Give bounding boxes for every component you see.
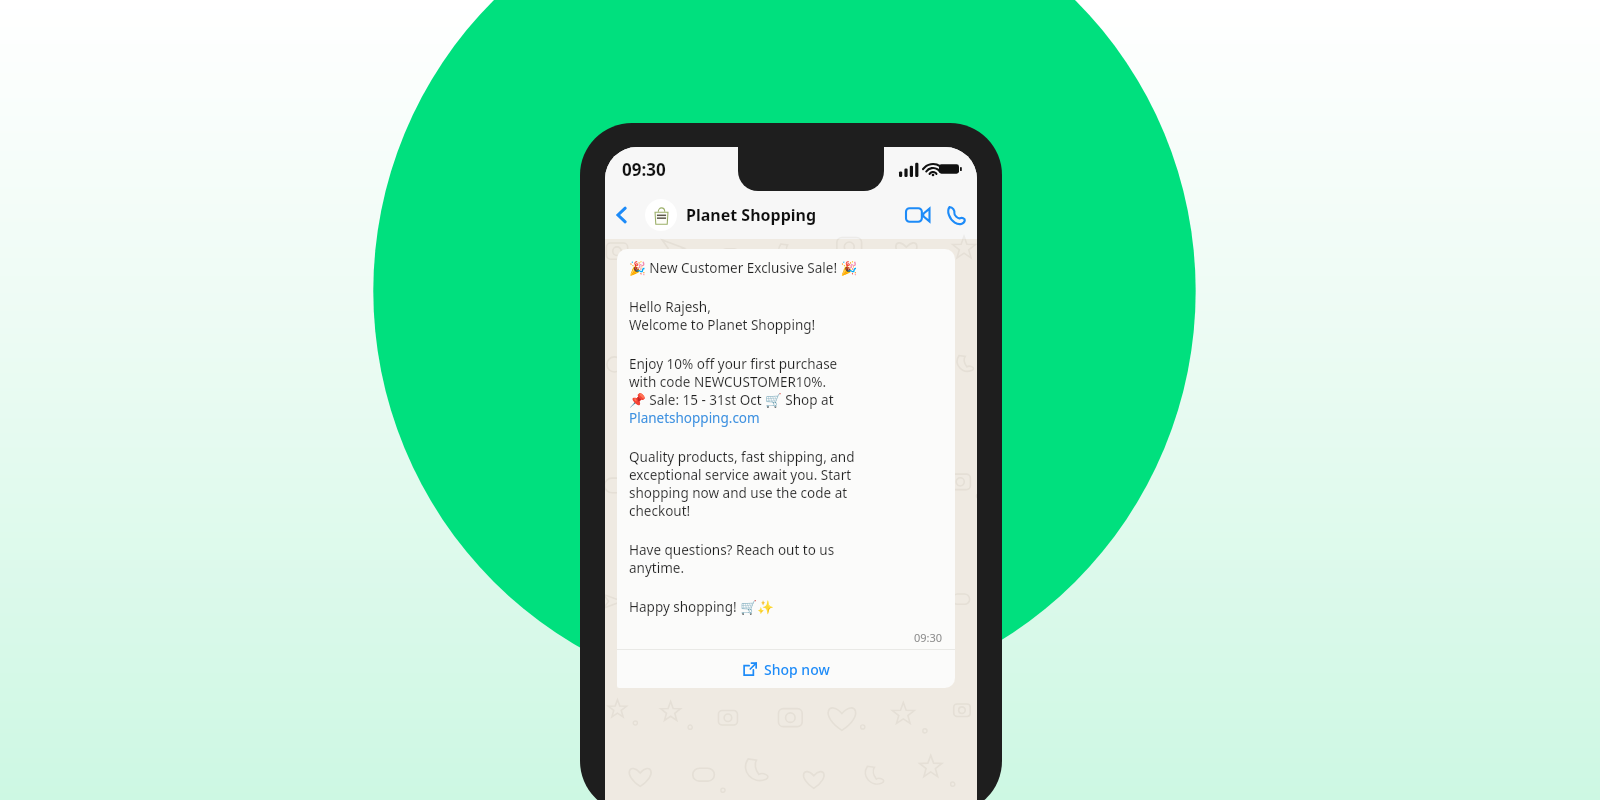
staticText: 🎉 New Customer Exclusive Sale! 🎉 xyxy=(629,259,858,277)
button[interactable]: Profile photo xyxy=(645,199,677,231)
staticText: Welcome to Planet Shopping! xyxy=(629,316,816,334)
staticText: Planetshopping.com xyxy=(629,409,760,427)
staticText: Quality products, fast shipping, and xyxy=(629,448,855,466)
staticText: checkout! xyxy=(629,502,691,520)
button[interactable]: Back xyxy=(605,191,639,239)
staticText: 09:30 xyxy=(914,630,943,645)
button[interactable]: Voice call xyxy=(937,196,975,234)
staticText: Shop now xyxy=(764,660,830,679)
button[interactable]: 🎉 New Customer Exclusive Sale! 🎉 xyxy=(617,249,955,688)
staticText: exceptional service await you. Start xyxy=(629,466,852,484)
button[interactable]: Shop now xyxy=(617,650,955,688)
staticText: Hello Rajesh, xyxy=(629,298,711,316)
staticText: Have questions? Reach out to us xyxy=(629,541,835,559)
staticText: 09:30 xyxy=(622,158,666,181)
staticText: shopping now and use the code at xyxy=(629,484,848,502)
staticText: Enjoy 10% off your first purchase xyxy=(629,355,838,373)
button[interactable]: Video call xyxy=(899,196,937,234)
staticText: anytime. xyxy=(629,559,685,577)
button[interactable]: Planet Shopping xyxy=(686,204,817,226)
staticText: Happy shopping! 🛒✨ xyxy=(629,598,774,616)
staticText: with code NEWCUSTOMER10%. xyxy=(629,373,827,391)
staticText: 📌 Sale: 15 - 31st Oct 🛒 Shop at xyxy=(629,391,834,409)
